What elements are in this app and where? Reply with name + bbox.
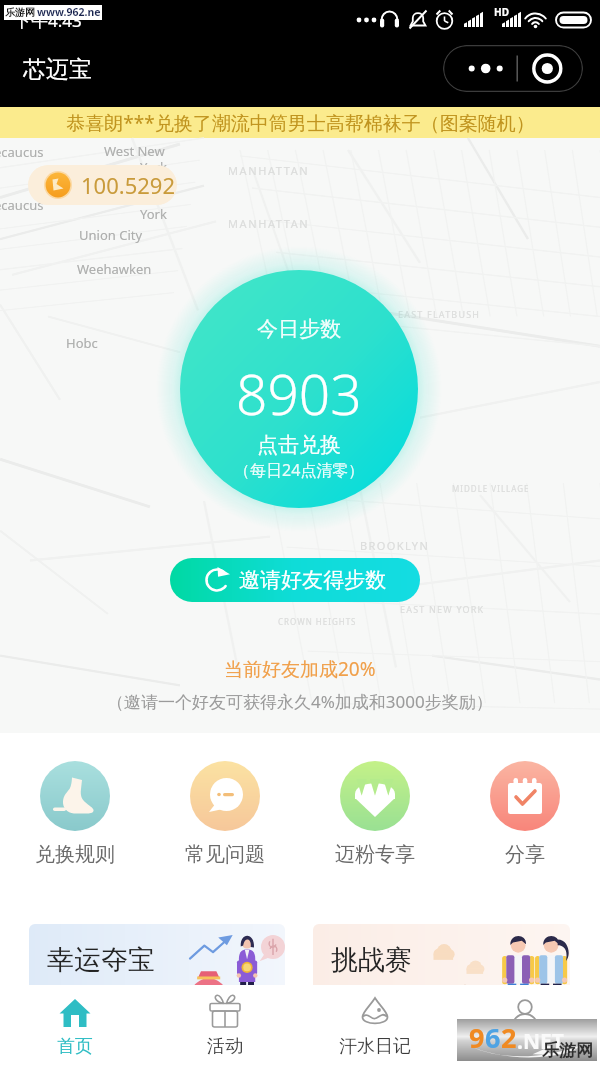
staticText: 迈粉专享 [335,842,415,867]
button[interactable]: 挑战赛 [313,924,570,995]
staticText: 恭喜朗***兑换了潮流中筒男士高帮棉袜子（图案随机） [66,110,535,136]
staticText: West New [104,142,165,160]
staticText: CROWN HEIGHTS [278,616,357,627]
button[interactable]: 邀请好友得步数 [170,558,420,602]
staticText: 2 [501,1019,517,1056]
staticText: 首页 [57,1035,93,1058]
staticText: 100.5292 [81,170,175,200]
staticText: 邀请好友得步数 [239,567,386,593]
button[interactable]: 活动 [150,985,300,1067]
staticText: MIDDLE VILLAGE [452,483,530,494]
staticText: 挑战赛 [331,943,412,977]
button[interactable]: 首页 [0,985,150,1067]
button[interactable]: 我的 [450,985,600,1067]
staticText: .NET [517,1027,564,1056]
staticText: EAST NEW YORK [400,603,485,615]
staticText: York [140,205,167,223]
staticText: 点击兑换 [257,432,341,458]
staticText: BROOKLYN [360,538,430,553]
staticText: （每日24点清零） [234,459,365,481]
staticText: 下午4:43 [14,9,82,32]
staticText: Weehawken [77,260,152,278]
staticText: MANHATTAN [228,163,310,178]
staticText: ecaucus [0,143,44,161]
button[interactable]: 兑换规则 [0,733,150,912]
staticText: 幸运夺宝 [47,943,155,977]
staticText: 汗水日记 [339,1035,411,1058]
staticText: 8903 [236,356,362,431]
staticText: 活动 [207,1035,243,1058]
button[interactable]: More options and close [443,45,583,92]
button[interactable]: 今日步数 [180,270,418,508]
staticText: 分享 [505,842,545,867]
staticText: ecaucus [0,196,44,214]
staticText: 乐游网 [5,6,35,19]
staticText: 9 [469,1019,485,1056]
staticText: 当前好友加成20% [224,656,376,682]
staticText: HD [494,5,509,19]
staticText: EAST FLATBUSH [398,308,481,320]
staticText: 兑换规则 [35,842,115,867]
staticText: 6 [485,1019,501,1056]
staticText: 乐游网 [542,1040,593,1061]
staticText: York [140,158,167,176]
button[interactable]: 分享 [450,733,600,912]
button[interactable]: 汗水日记 [300,985,450,1067]
staticText: Flushing Ave [360,393,414,405]
staticText: Hobc [66,334,98,352]
staticText: MANHATTAN [228,216,310,231]
staticText: 今日步数 [257,316,341,342]
button[interactable]: 幸运夺宝 [29,924,285,995]
button[interactable]: 100.5292 [28,165,177,205]
staticText: 我的 [507,1035,543,1058]
staticText: 芯迈宝 [23,55,92,84]
staticText: Union City [79,226,143,244]
button[interactable]: 常见问题 [150,733,300,912]
staticText: Atlantic Ave [300,398,350,410]
button[interactable]: 迈粉专享 [300,733,450,912]
staticText: www.962.net [37,5,102,20]
staticText: 常见问题 [185,842,265,867]
staticText: （邀请一个好友可获得永久4%加成和3000步奖励） [107,690,493,713]
